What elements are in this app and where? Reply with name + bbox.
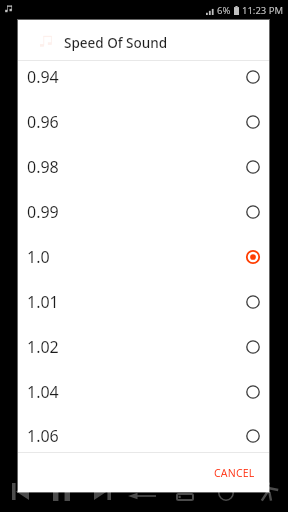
button[interactable]: 1.06 [18,414,269,452]
button[interactable]: Recent apps [218,485,234,501]
button[interactable]: 1.01 [18,279,269,324]
button[interactable]: Pause [53,483,70,501]
staticText: 1.01 [27,291,246,313]
staticText: 11:23 PM [242,4,284,17]
staticText: 6% [217,4,231,17]
button[interactable]: 0.94 [18,61,269,99]
button[interactable]: 0.98 [18,144,269,189]
button[interactable]: Accessibility [258,482,280,501]
button[interactable]: 1.0 [18,234,269,279]
staticText: CANCEL [214,466,255,480]
staticText: 1.02 [27,336,246,358]
staticText: 0.99 [27,201,246,223]
button[interactable]: 1.02 [18,324,269,369]
staticText: 0.94 [27,66,246,88]
staticText: Speed Of Sound [64,34,168,52]
button[interactable]: Back [128,490,156,502]
button[interactable]: 0.99 [18,189,269,234]
button[interactable]: Previous track [12,483,29,500]
staticText: 1.0 [27,246,246,268]
staticText: 1.06 [27,425,246,447]
button[interactable]: Home [176,493,194,501]
button[interactable]: 0.96 [18,99,269,144]
staticText: 0.98 [27,156,246,178]
button[interactable]: CANCEL [198,456,269,490]
button[interactable]: 1.04 [18,369,269,414]
staticText: 0.96 [27,111,246,133]
button[interactable]: Next track [94,483,111,500]
staticText: 1.04 [27,381,246,403]
